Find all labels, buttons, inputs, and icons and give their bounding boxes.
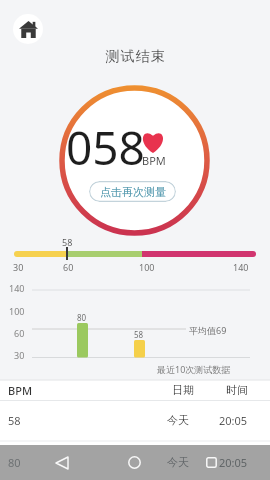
staticText: 今天 xyxy=(167,455,189,469)
staticText: 平均值69 xyxy=(189,324,227,336)
staticText: BPM xyxy=(142,153,166,168)
staticText: 140 xyxy=(233,261,249,273)
staticText: 100 xyxy=(9,305,25,317)
staticText: 100 xyxy=(139,261,155,273)
staticText: 最近10次测试数据 xyxy=(157,363,231,375)
staticText: BPM xyxy=(8,383,33,398)
staticText: 30 xyxy=(13,261,24,273)
staticText: 点击再次测量 xyxy=(100,185,166,199)
staticText: 058 xyxy=(66,116,145,177)
staticText: 20:05 xyxy=(219,455,248,470)
staticText: 58 xyxy=(62,236,73,248)
staticText: 20:05 xyxy=(219,413,248,428)
staticText: 时间 xyxy=(226,383,248,397)
staticText: 58 xyxy=(134,329,144,340)
staticText: 测试结束 xyxy=(105,48,165,66)
button[interactable] xyxy=(116,445,152,480)
staticText: 80 xyxy=(77,312,87,323)
button[interactable] xyxy=(44,445,80,480)
staticText: 80 xyxy=(8,455,21,470)
staticText: 今天 xyxy=(167,413,189,427)
staticText: 140 xyxy=(9,282,25,294)
staticText: 30 xyxy=(14,349,25,361)
staticText: 60 xyxy=(63,261,74,273)
button[interactable] xyxy=(13,14,43,44)
button[interactable]: 点击再次测量 xyxy=(89,181,176,202)
button[interactable] xyxy=(193,445,229,480)
staticText: 58 xyxy=(8,413,21,428)
staticText: 日期 xyxy=(172,383,194,397)
staticText: 60 xyxy=(14,327,25,339)
